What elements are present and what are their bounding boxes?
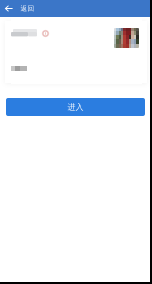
staticText: 返回 [21, 4, 35, 13]
button[interactable]: Verification image [114, 28, 139, 48]
button[interactable] [11, 18, 142, 49]
button[interactable]: 返回 [5, 0, 65, 17]
button[interactable]: Clear [42, 30, 49, 37]
button[interactable] [11, 53, 142, 84]
staticText: 进入 [67, 102, 83, 112]
button[interactable]: 进入 [6, 98, 145, 116]
